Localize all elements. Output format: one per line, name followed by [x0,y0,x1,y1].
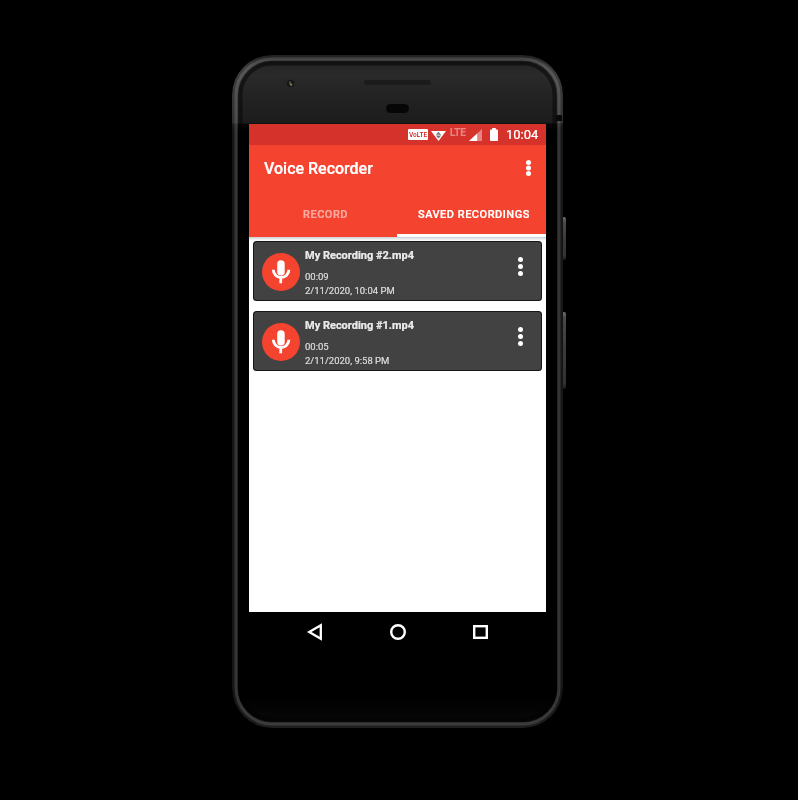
button[interactable]: Recording options [505,312,541,352]
staticText: VoLTE [409,131,428,139]
staticText: 00:09 [305,271,329,282]
button[interactable]: RECORD [249,195,397,237]
staticText: My Recording #1.mp4 [305,319,415,332]
staticText: Voice Recorder [264,159,373,178]
staticText: 10:04 [506,127,539,142]
staticText: 2/11/2020, 9:58 PM [305,355,390,366]
staticText: SAVED RECORDINGS [418,208,530,221]
staticText: LTE [450,127,466,139]
button[interactable]: More options [508,148,548,188]
staticText: 2/11/2020, 10:04 PM [305,285,395,296]
button[interactable]: My Recording #1.mp4 [254,312,541,370]
button[interactable]: Back [297,612,333,648]
staticText: My Recording #2.mp4 [305,249,415,262]
staticText: 00:05 [305,341,329,352]
button[interactable]: Recent apps [462,612,498,648]
button[interactable]: Recording options [505,242,541,282]
button[interactable]: My Recording #2.mp4 [254,242,541,300]
button[interactable]: SAVED RECORDINGS [397,195,546,237]
staticText: RECORD [303,208,349,221]
button[interactable]: Home [380,612,416,648]
